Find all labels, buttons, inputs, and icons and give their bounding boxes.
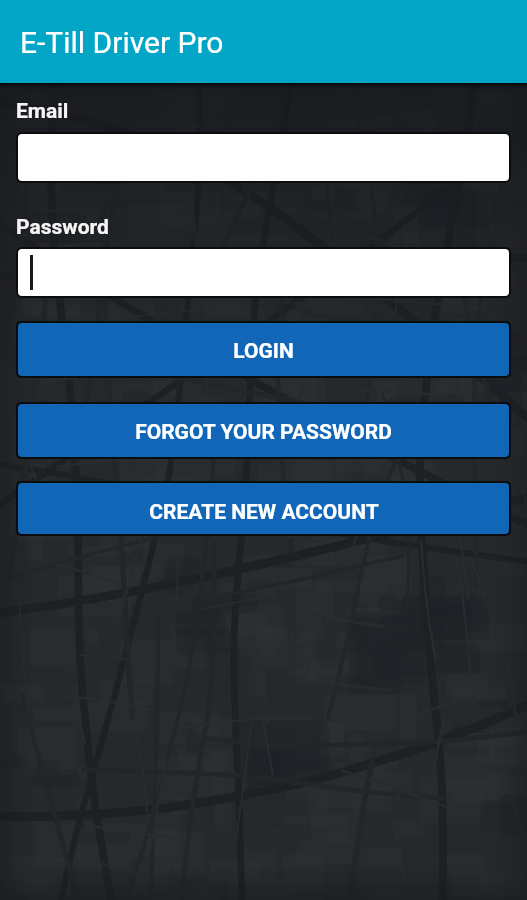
- staticText: Password: [16, 215, 109, 240]
- button[interactable]: Password input field: [18, 249, 509, 296]
- staticText: Email: [16, 99, 69, 124]
- staticText: FORGOT YOUR PASSWORD: [135, 420, 392, 445]
- button[interactable]: Email input field: [18, 134, 509, 181]
- staticText: E-Till Driver Pro: [20, 25, 224, 60]
- button[interactable]: LOGIN: [18, 323, 509, 376]
- button[interactable]: CREATE NEW ACCOUNT: [18, 483, 509, 534]
- staticText: CREATE NEW ACCOUNT: [149, 500, 379, 525]
- staticText: LOGIN: [233, 339, 294, 364]
- button[interactable]: FORGOT YOUR PASSWORD: [18, 404, 509, 457]
